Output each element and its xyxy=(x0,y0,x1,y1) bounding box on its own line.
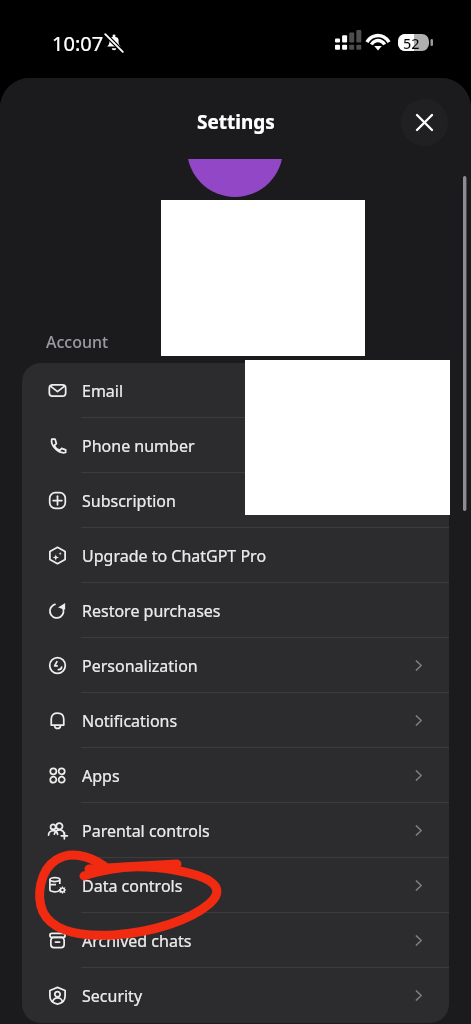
staticText: Settings xyxy=(197,109,275,135)
staticText: Security xyxy=(82,985,413,1007)
staticText: Account xyxy=(46,331,109,353)
staticText: Data controls xyxy=(82,875,413,897)
staticText: 52 xyxy=(403,33,420,53)
staticText: Archived chats xyxy=(82,930,413,952)
staticText: 10:07 xyxy=(52,30,104,57)
button[interactable]: Notifications xyxy=(22,693,449,748)
button[interactable]: Archived chats xyxy=(22,913,449,968)
button[interactable]: Data controls xyxy=(22,858,449,913)
staticText: Upgrade to ChatGPT Pro xyxy=(82,545,449,567)
staticText: Restore purchases xyxy=(82,600,449,622)
button[interactable]: Security xyxy=(22,968,449,1023)
button[interactable]: Subscription xyxy=(22,473,449,528)
button[interactable]: Phone number xyxy=(22,418,449,473)
staticText: Email xyxy=(82,380,449,402)
staticText: Notifications xyxy=(82,710,413,732)
button[interactable]: Upgrade to ChatGPT Pro xyxy=(22,528,449,583)
staticText: Subscription xyxy=(82,490,449,512)
staticText: Phone number xyxy=(82,435,449,457)
button[interactable]: Close xyxy=(401,99,448,146)
button[interactable]: Restore purchases xyxy=(22,583,449,638)
button[interactable]: Parental controls xyxy=(22,803,449,858)
button[interactable]: Apps xyxy=(22,748,449,803)
staticText: Apps xyxy=(82,765,413,787)
button[interactable]: Email xyxy=(22,363,449,418)
staticText: Parental controls xyxy=(82,820,413,842)
button[interactable]: Personalization xyxy=(22,638,449,693)
staticText: Personalization xyxy=(82,655,413,677)
